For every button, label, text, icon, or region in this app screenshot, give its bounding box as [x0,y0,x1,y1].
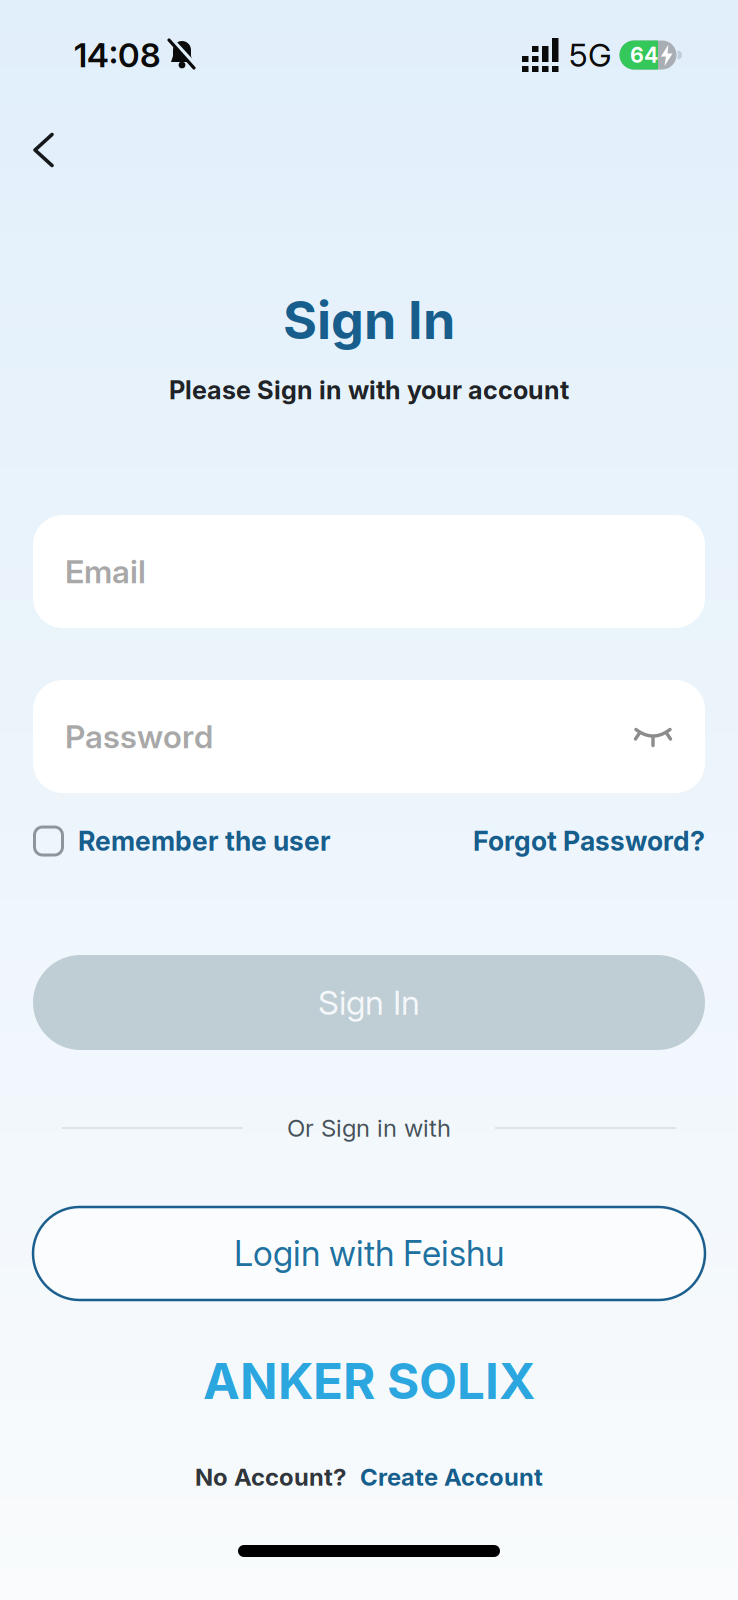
button[interactable]: Show password [627,718,679,754]
staticText: Remember the user [78,825,331,857]
button[interactable]: Login with Feishu [0,1207,738,1300]
staticText: 14:08 [74,35,161,75]
staticText: Email [65,552,146,591]
staticText: Create Account [360,1462,543,1491]
button[interactable]: Back [27,124,61,175]
staticText: 5G [569,36,612,74]
staticText: 64 [630,42,658,68]
staticText: Please Sign in with your account [169,375,569,405]
staticText: Sign In [283,288,455,351]
staticText: No Account? [195,1462,346,1491]
button[interactable]: Remember the user [33,825,331,857]
staticText: Login with Feishu [234,1232,504,1274]
staticText: Or Sign in with [287,1113,451,1142]
staticText: Password [65,717,213,756]
staticText: Forgot Password? [473,825,705,857]
button[interactable]: Create Account [360,1462,543,1491]
button[interactable]: Forgot Password? [473,825,705,857]
staticText: ANKER SOLIX [203,1351,535,1411]
staticText: Sign In [318,982,420,1023]
button[interactable]: Sign In [0,955,738,1050]
